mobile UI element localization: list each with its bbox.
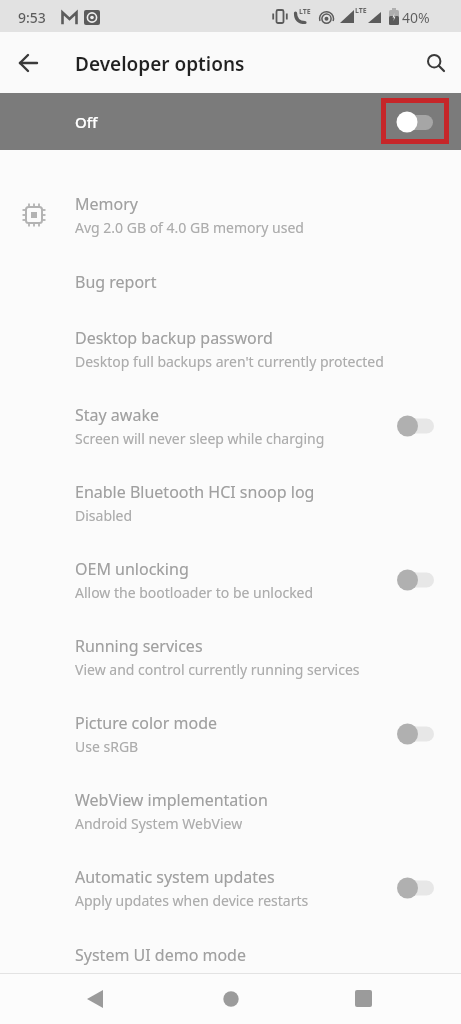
button[interactable] [343,983,383,1015]
staticText: 40% [402,8,430,27]
button[interactable]: Stay awake [0,387,461,464]
button[interactable]: OEM unlocking [0,541,461,618]
staticText: Desktop full backups aren't currently pr… [75,352,384,371]
staticText: View and control currently running servi… [75,660,360,679]
staticText: Android System WebView [75,814,243,833]
staticText: Automatic system updates [75,866,275,888]
staticText: Use sRGB [75,737,139,756]
button[interactable]: WebView implementation [0,772,461,849]
button[interactable]: Desktop backup password [0,310,461,387]
staticText: Disabled [75,506,133,525]
staticText: Stay awake [75,404,159,426]
staticText: System UI demo mode [75,944,246,966]
staticText: Bug report [75,271,157,293]
button[interactable]: Bug report [0,253,461,310]
staticText: 9:53 [18,8,46,27]
staticText: Developer options [75,51,245,77]
staticText: Screen will never sleep while charging [75,429,325,448]
staticText: Off [75,112,98,132]
staticText: Desktop backup password [75,327,273,349]
staticText: WebView implementation [75,789,268,811]
staticText: Apply updates when device restarts [75,891,309,910]
staticText: Avg 2.0 GB of 4.0 GB memory used [75,218,304,237]
button[interactable] [211,983,251,1015]
staticText: Memory [75,193,138,215]
button[interactable]: System UI demo mode [0,926,461,983]
staticText: Allow the bootloader to be unlocked [75,583,314,602]
staticText: Picture color mode [75,712,218,734]
button[interactable]: Enable Bluetooth HCI snoop log [0,464,461,541]
button[interactable] [10,53,48,73]
staticText: Enable Bluetooth HCI snoop log [75,481,315,503]
button[interactable]: Picture color mode [0,695,461,772]
button[interactable]: Memory [0,176,461,253]
staticText: Running services [75,635,203,657]
button[interactable]: Running services [0,618,461,695]
button[interactable] [420,53,452,75]
button[interactable] [75,983,115,1015]
staticText: LTE [299,7,311,17]
staticText: OEM unlocking [75,558,189,580]
staticText: LTE [355,6,367,16]
button[interactable]: Off [0,93,461,150]
button[interactable]: Automatic system updates [0,849,461,926]
